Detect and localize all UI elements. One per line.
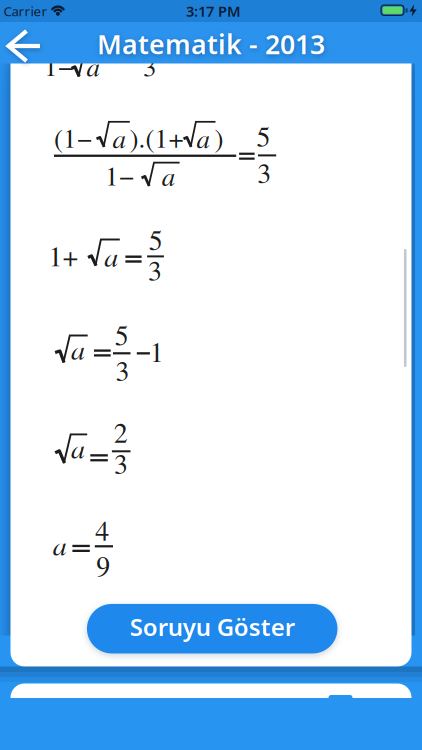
staticText: 2 [114,413,128,451]
button[interactable]: Back [0,0,48,70]
staticText: 9 [96,546,110,584]
staticText: a [104,237,118,274]
staticText: 5 [257,117,271,154]
staticText: 3 [114,444,128,482]
staticText: 3:17 PM [186,1,241,21]
button[interactable]: Soruyu Göster [87,604,337,653]
staticText: 3 [148,251,162,289]
staticText: 1 [150,332,164,370]
staticText: 3 [143,48,157,84]
staticText: 5 [149,221,163,258]
staticText: 3 [115,351,129,389]
staticText: a [71,428,85,466]
staticText: a [53,525,67,563]
staticText: ) [214,119,223,155]
staticText: 5 [115,316,129,353]
staticText: 1− [44,48,73,84]
staticText: a [86,48,100,84]
staticText: 1− [105,157,134,193]
staticText: Soruyu Göster [130,611,295,643]
staticText: ).(1+ [129,119,183,155]
staticText: 3 [257,154,271,191]
staticText: a [162,157,176,193]
staticText: a [112,119,126,155]
staticText: a [196,119,210,155]
staticText: a [71,330,85,367]
staticText: Carrier [3,2,47,20]
staticText: (1− [54,119,92,155]
staticText: Matematik - 2013 [97,26,325,62]
staticText: 1+ [48,237,78,274]
staticText: 4 [95,511,109,549]
